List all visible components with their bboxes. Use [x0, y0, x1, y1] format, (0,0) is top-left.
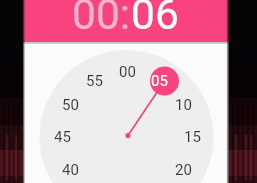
staticText: 50	[62, 96, 79, 114]
button[interactable]: 50	[56, 95, 84, 115]
button[interactable]	[150, 67, 179, 96]
staticText: 20	[175, 161, 192, 179]
button[interactable]: 45	[48, 127, 76, 147]
button[interactable]: 55	[80, 71, 108, 91]
button[interactable]: 10	[169, 95, 197, 115]
button[interactable]: 20	[169, 160, 197, 180]
staticText: 00	[119, 63, 136, 81]
staticText: 15	[184, 128, 201, 146]
button[interactable]: 00:	[72, 0, 131, 40]
staticText: 05	[151, 72, 168, 90]
button[interactable]: 40	[56, 160, 84, 180]
staticText: 40	[62, 161, 79, 179]
staticText: 00:	[72, 0, 131, 40]
staticText: 55	[86, 72, 103, 90]
staticText: 10	[175, 96, 192, 114]
staticText: 06	[131, 0, 179, 40]
button[interactable]: 06	[131, 0, 179, 40]
button[interactable]: 00	[113, 62, 141, 82]
button[interactable]: 15	[178, 127, 206, 147]
staticText: 45	[54, 128, 71, 146]
button[interactable]: 05	[145, 71, 173, 91]
